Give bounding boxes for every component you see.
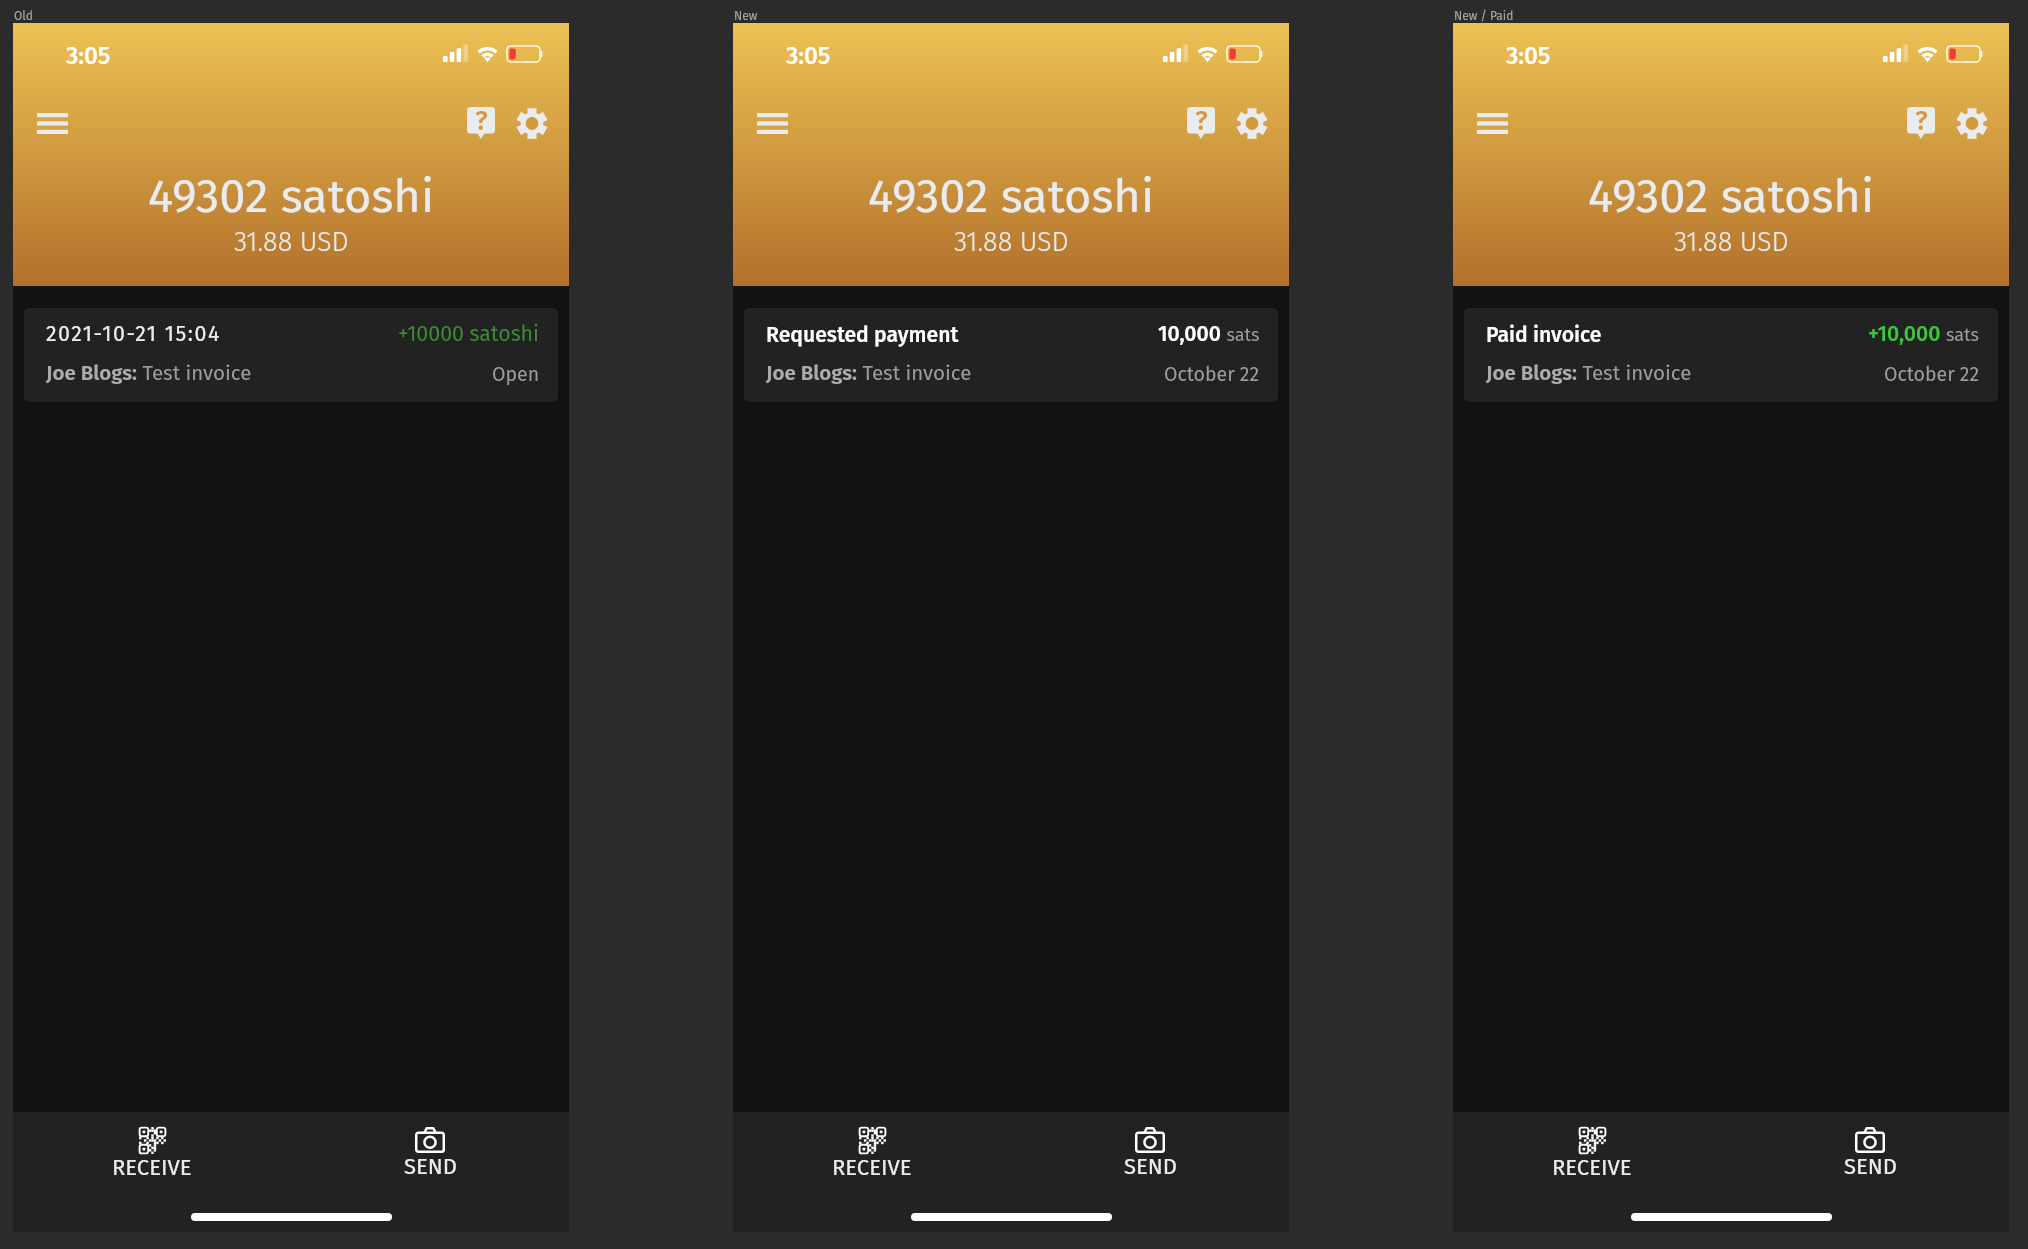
button[interactable]: 2021-10-21 15:04 — [24, 308, 558, 402]
staticText: +10000 satoshi — [398, 321, 540, 347]
staticText: ? — [1195, 105, 1208, 137]
button[interactable]: Menu — [27, 98, 77, 148]
staticText: 2021-10-21 15:04 — [46, 321, 221, 347]
button[interactable]: Settings — [1227, 98, 1277, 148]
staticText: ? — [475, 105, 488, 137]
button[interactable]: RECEIVE — [733, 1115, 1011, 1191]
staticText: Open — [492, 363, 540, 386]
staticText: 49302 satoshi — [148, 168, 435, 224]
staticText: +10,000 sats — [1868, 321, 1980, 347]
button[interactable]: RECEIVE — [13, 1115, 291, 1191]
button[interactable]: Requested payment — [744, 308, 1278, 402]
staticText: Joe Blogs: Test invoice — [766, 361, 972, 386]
button[interactable]: SEND — [291, 1115, 569, 1191]
staticText: SEND — [1844, 1153, 1897, 1179]
staticText: RECEIVE — [1552, 1154, 1632, 1180]
staticText: Requested payment — [766, 322, 959, 347]
staticText: October 22 — [1164, 363, 1260, 386]
button[interactable]: Menu — [1467, 98, 1517, 148]
staticText: 49302 satoshi — [868, 168, 1155, 224]
button[interactable]: Help — [1176, 98, 1226, 148]
button[interactable]: Help — [1896, 98, 1946, 148]
staticText: 3:05 — [1506, 42, 1551, 71]
staticText: Joe Blogs: Test invoice — [46, 361, 252, 386]
staticText: New — [734, 9, 758, 23]
button[interactable]: RECEIVE — [1453, 1115, 1731, 1191]
staticText: 31.88 USD — [1674, 226, 1789, 258]
staticText: RECEIVE — [112, 1154, 192, 1180]
button[interactable]: SEND — [1011, 1115, 1289, 1191]
staticText: October 22 — [1884, 363, 1980, 386]
staticText: SEND — [1124, 1153, 1177, 1179]
staticText: Paid invoice — [1486, 322, 1602, 347]
button[interactable]: Settings — [1947, 98, 1997, 148]
button[interactable]: Paid invoice — [1464, 308, 1998, 402]
staticText: ? — [1915, 105, 1928, 137]
button[interactable]: Menu — [747, 98, 797, 148]
staticText: RECEIVE — [832, 1154, 912, 1180]
staticText: New / Paid — [1454, 9, 1514, 23]
staticText: 3:05 — [66, 42, 111, 71]
staticText: 3:05 — [786, 42, 831, 71]
button[interactable]: SEND — [1731, 1115, 2009, 1191]
staticText: 10,000 sats — [1158, 321, 1260, 347]
button[interactable]: Help — [456, 98, 506, 148]
button[interactable]: Settings — [507, 98, 557, 148]
staticText: Old — [14, 9, 33, 23]
staticText: 31.88 USD — [954, 226, 1069, 258]
staticText: SEND — [404, 1153, 457, 1179]
staticText: 31.88 USD — [234, 226, 349, 258]
staticText: 49302 satoshi — [1588, 168, 1875, 224]
staticText: Joe Blogs: Test invoice — [1486, 361, 1692, 386]
